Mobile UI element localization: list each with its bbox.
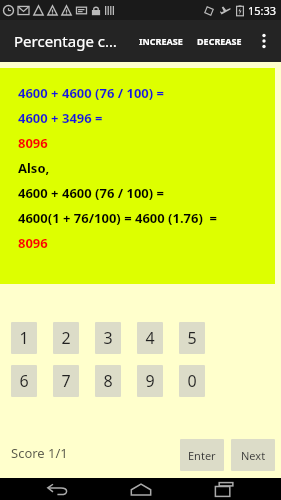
- staticText: 8096: [18, 134, 48, 152]
- staticText: 4: [145, 327, 155, 349]
- staticText: 8096: [18, 234, 48, 252]
- button[interactable]: 1: [11, 322, 37, 354]
- staticText: 2: [61, 327, 71, 349]
- button[interactable]: Enter: [180, 439, 224, 471]
- button[interactable]: 8: [95, 365, 121, 397]
- staticText: Also,: [18, 159, 50, 177]
- staticText: 4600 + 4600 (76 / 100) =: [18, 84, 165, 102]
- button[interactable]: 6: [11, 365, 37, 397]
- button[interactable]: Recent apps: [198, 478, 250, 500]
- staticText: Next: [241, 448, 266, 463]
- staticText: 6: [19, 370, 29, 392]
- staticText: INCREASE: [139, 35, 183, 47]
- button[interactable]: Next: [231, 439, 275, 471]
- staticText: 3: [103, 327, 113, 349]
- button[interactable]: 2: [53, 322, 79, 354]
- staticText: 8: [103, 370, 113, 392]
- button[interactable]: 9: [137, 365, 163, 397]
- button[interactable]: INCREASE: [132, 27, 190, 55]
- staticText: 4600 + 4600 (76 / 100) =: [18, 184, 165, 202]
- staticText: 5: [187, 327, 197, 349]
- staticText: 7: [61, 370, 71, 392]
- staticText: Score 1/1: [11, 444, 68, 462]
- button[interactable]: 0: [179, 365, 205, 397]
- button[interactable]: 5: [179, 322, 205, 354]
- staticText: 1: [19, 327, 29, 349]
- button[interactable]: DECREASE: [190, 27, 249, 55]
- staticText: 9: [145, 370, 155, 392]
- button[interactable]: 3: [95, 322, 121, 354]
- staticText: 15:33: [248, 3, 277, 18]
- button[interactable]: More options: [249, 20, 279, 62]
- button[interactable]: 4: [137, 322, 163, 354]
- staticText: DECREASE: [197, 35, 242, 47]
- staticText: 4600 + 3496 =: [18, 109, 103, 127]
- staticText: Enter: [188, 448, 216, 463]
- staticText: 4600(1 + 76/100) = 4600 (1.76) =: [18, 209, 218, 227]
- button[interactable]: 7: [53, 365, 79, 397]
- button[interactable]: Home: [115, 478, 167, 500]
- button[interactable]: Back: [31, 478, 83, 500]
- staticText: Percentage c…: [14, 31, 117, 51]
- staticText: 0: [187, 370, 197, 392]
